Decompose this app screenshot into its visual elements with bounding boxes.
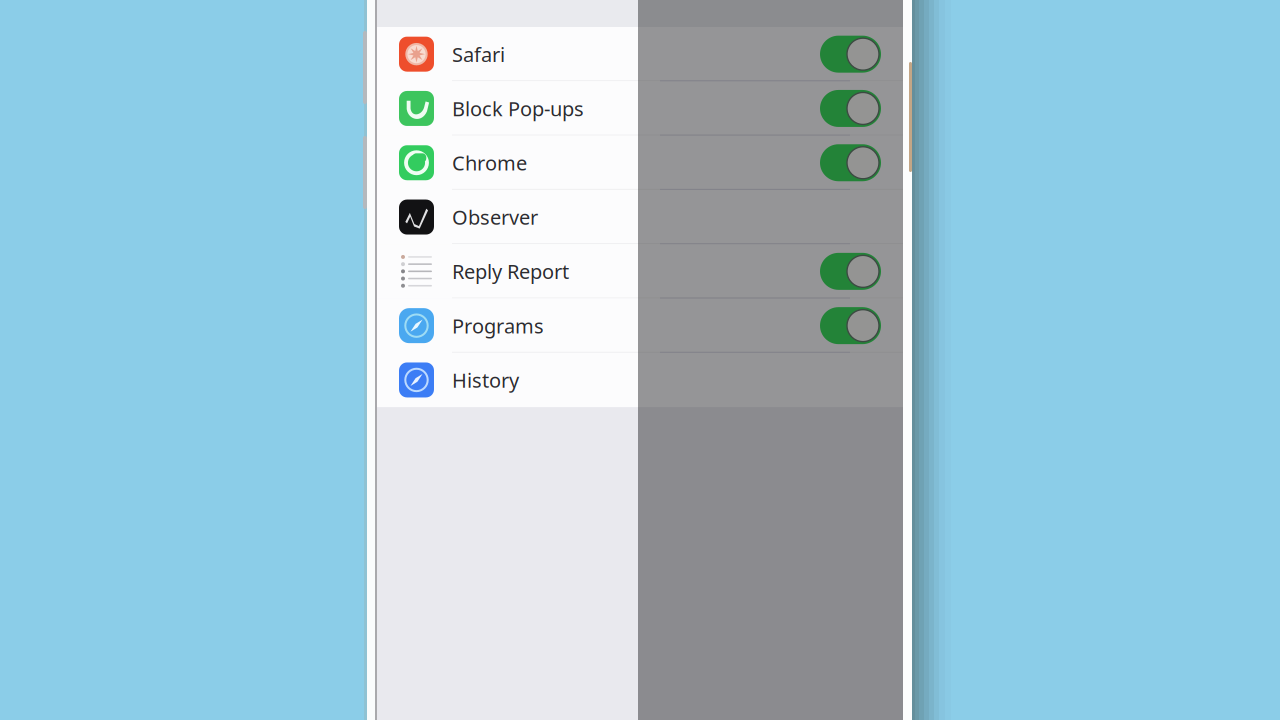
button[interactable]: Reply Report xyxy=(820,253,881,290)
staticText: Observer xyxy=(452,204,538,230)
button[interactable]: History xyxy=(377,353,903,407)
staticText: Reply Report xyxy=(452,258,569,285)
staticText: History xyxy=(452,367,519,393)
button[interactable]: Safari xyxy=(820,36,881,73)
staticText: Block Pop-ups xyxy=(452,95,584,122)
button[interactable]: Reply Report xyxy=(377,244,903,298)
button[interactable]: Programs xyxy=(820,307,881,344)
button[interactable]: Chrome xyxy=(820,144,881,181)
button[interactable]: Observer xyxy=(377,190,903,244)
button[interactable]: Block Pop-ups xyxy=(377,81,903,136)
staticText: Chrome xyxy=(452,149,527,176)
button[interactable]: Block Pop-ups xyxy=(820,90,881,127)
staticText: Programs xyxy=(452,312,544,339)
button[interactable]: Safari xyxy=(377,27,903,81)
button[interactable]: Programs xyxy=(377,298,903,353)
staticText: Safari xyxy=(452,41,505,67)
button[interactable]: Chrome xyxy=(377,136,903,190)
